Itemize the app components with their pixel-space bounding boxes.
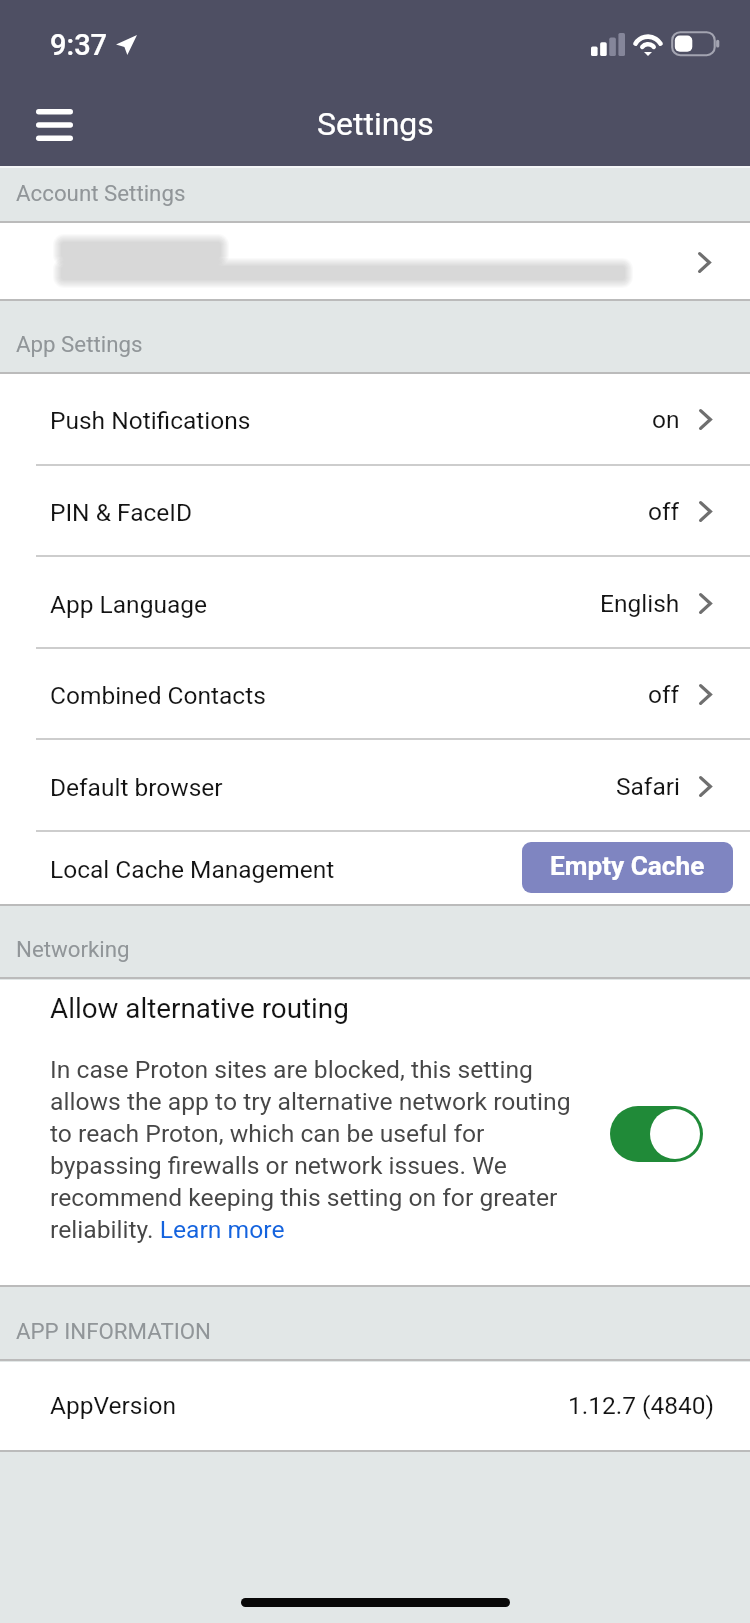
button[interactable]: Allow alternative routing, on	[610, 1106, 703, 1162]
staticText: 9:37	[50, 28, 108, 62]
staticText: In case Proton sites are blocked, this s…	[50, 1052, 583, 1244]
staticText: AppVersion	[50, 1391, 176, 1420]
staticText: Empty Cache	[550, 851, 705, 882]
staticText: off	[648, 497, 680, 526]
staticText: Combined Contacts	[50, 681, 266, 710]
staticText: Local Cache Management	[50, 855, 335, 884]
staticText: Push Notifications	[50, 406, 251, 435]
staticText: Safari	[616, 772, 680, 801]
button[interactable]: Push Notifications	[0, 374, 750, 465]
staticText: Account Settings	[16, 180, 186, 206]
staticText: APP INFORMATION	[16, 1318, 211, 1344]
button[interactable]: Open navigation menu	[22, 95, 87, 155]
staticText: Allow alternative routing	[50, 992, 349, 1025]
button[interactable]: PIN & FaceID	[0, 465, 750, 557]
button[interactable]: Combined Contacts	[0, 648, 750, 740]
button[interactable]: Empty Cache	[522, 842, 733, 893]
button[interactable]: App Language	[0, 557, 750, 649]
staticText: 1.12.7 (4840)	[568, 1391, 715, 1420]
staticText: on	[652, 405, 680, 434]
staticText: App Settings	[16, 331, 143, 357]
staticText: English	[600, 589, 680, 618]
staticText: Default browser	[50, 773, 223, 802]
staticText: PIN & FaceID	[50, 498, 193, 527]
button[interactable]	[0, 223, 750, 301]
staticText: Networking	[16, 936, 130, 962]
button[interactable]: Default browser	[0, 740, 750, 832]
staticText: off	[648, 680, 680, 709]
staticText: Settings	[317, 105, 434, 143]
staticText: App Language	[50, 590, 207, 619]
